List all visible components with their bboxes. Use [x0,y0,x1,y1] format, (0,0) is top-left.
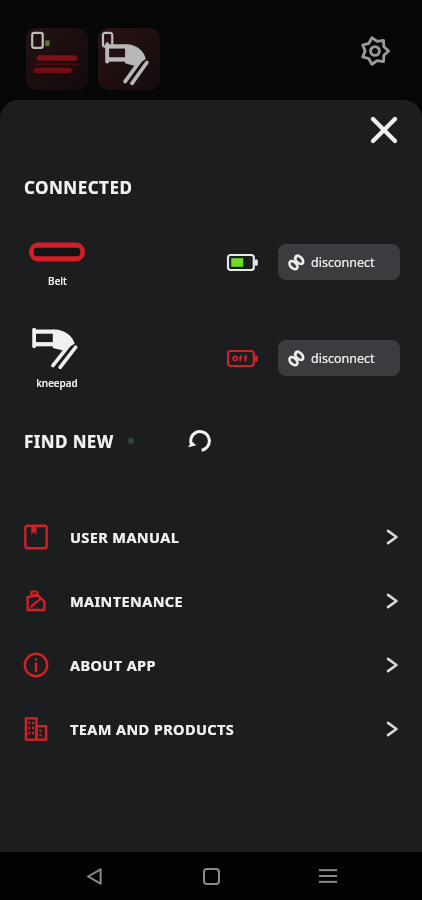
staticText: USER MANUAL [70,527,180,547]
button[interactable]: disconnect [278,340,400,376]
staticText: CONNECTED [24,176,133,199]
button[interactable]: Belt tile [26,28,88,90]
staticText: TEAM AND PRODUCTS [70,719,235,739]
button[interactable]: Close [360,106,408,154]
staticText: disconnect [311,254,375,271]
button[interactable]: ABOUT APP [0,633,422,697]
staticText: FIND NEW [24,430,114,453]
staticText: kneepad [36,376,78,390]
button[interactable]: USER MANUAL [0,505,422,569]
staticText: Belt [48,274,67,288]
staticText: MAINTENANCE [70,591,184,611]
button[interactable]: Settings [352,28,398,74]
staticText: ABOUT APP [70,655,156,675]
button[interactable]: Back [71,853,117,899]
button[interactable]: Kneepad tile [98,28,160,90]
button[interactable]: TEAM AND PRODUCTS [0,697,422,761]
button[interactable]: MAINTENANCE [0,569,422,633]
button[interactable]: Home [188,853,234,899]
staticText: disconnect [311,350,375,367]
button[interactable]: Recent apps [305,853,351,899]
button[interactable]: Refresh [178,419,222,463]
button[interactable]: disconnect [278,244,400,280]
